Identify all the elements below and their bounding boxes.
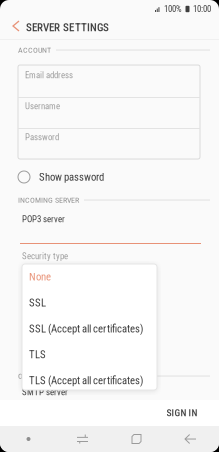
button[interactable]: Show password [18,167,104,187]
staticText: Email address [25,70,73,80]
staticText: 10:00 [193,4,211,14]
button[interactable]: SSL (Accept all certificates) [22,316,158,342]
button[interactable]: Recents [109,426,163,452]
staticText: OUTGOING SERVER [18,371,79,381]
button[interactable]: TLS [22,342,158,368]
button[interactable]: SIGN IN [150,400,214,426]
staticText: SIGN IN [166,407,197,419]
staticText: TLS (Accept all certificates) [29,374,143,387]
staticText: Password [25,132,59,142]
button[interactable]: Back [163,426,217,452]
staticText: Show password [39,171,104,183]
staticText: SMTP server [22,387,68,397]
staticText: POP3 server [22,214,65,224]
staticText: INCOMING SERVER [18,195,79,205]
staticText: None [29,271,51,283]
staticText: ACCOUNT [18,45,51,55]
button[interactable]: Hide keyboard [55,426,109,452]
staticText: SSL [29,297,46,309]
staticText: Username [25,101,60,111]
staticText: TLS [29,348,46,361]
button[interactable]: TLS (Accept all certificates) [22,368,158,393]
staticText: Security type [22,251,68,261]
staticText: SSL (Accept all certificates) [29,322,143,335]
button[interactable]: None [22,264,158,290]
staticText: SERVER SETTINGS [26,21,109,34]
button[interactable]: Back [6,16,26,36]
staticText: 100% [164,4,182,14]
button[interactable]: Keyboard [1,426,55,452]
button[interactable]: SSL [22,290,158,316]
